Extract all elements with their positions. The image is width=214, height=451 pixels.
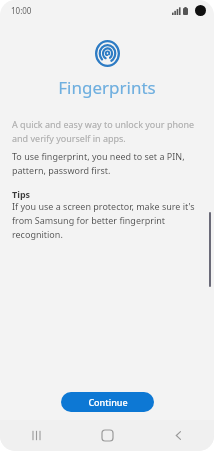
staticText: 10:00 xyxy=(11,5,32,16)
staticText: To use fingerprint, you need to set a PI… xyxy=(12,150,200,177)
other: Fingerprint xyxy=(95,40,120,67)
staticText: Tips xyxy=(12,188,31,200)
staticText: If you use a screen protector, make sure… xyxy=(12,200,200,241)
button[interactable]: Continue xyxy=(61,392,154,412)
button[interactable]: Back xyxy=(143,420,214,451)
staticText: Continue xyxy=(88,396,128,408)
button[interactable]: Recents xyxy=(0,420,72,451)
button[interactable]: Home xyxy=(72,420,143,451)
staticText: A quick and easy way to unlock your phon… xyxy=(12,118,200,145)
staticText: Fingerprints xyxy=(58,76,156,99)
